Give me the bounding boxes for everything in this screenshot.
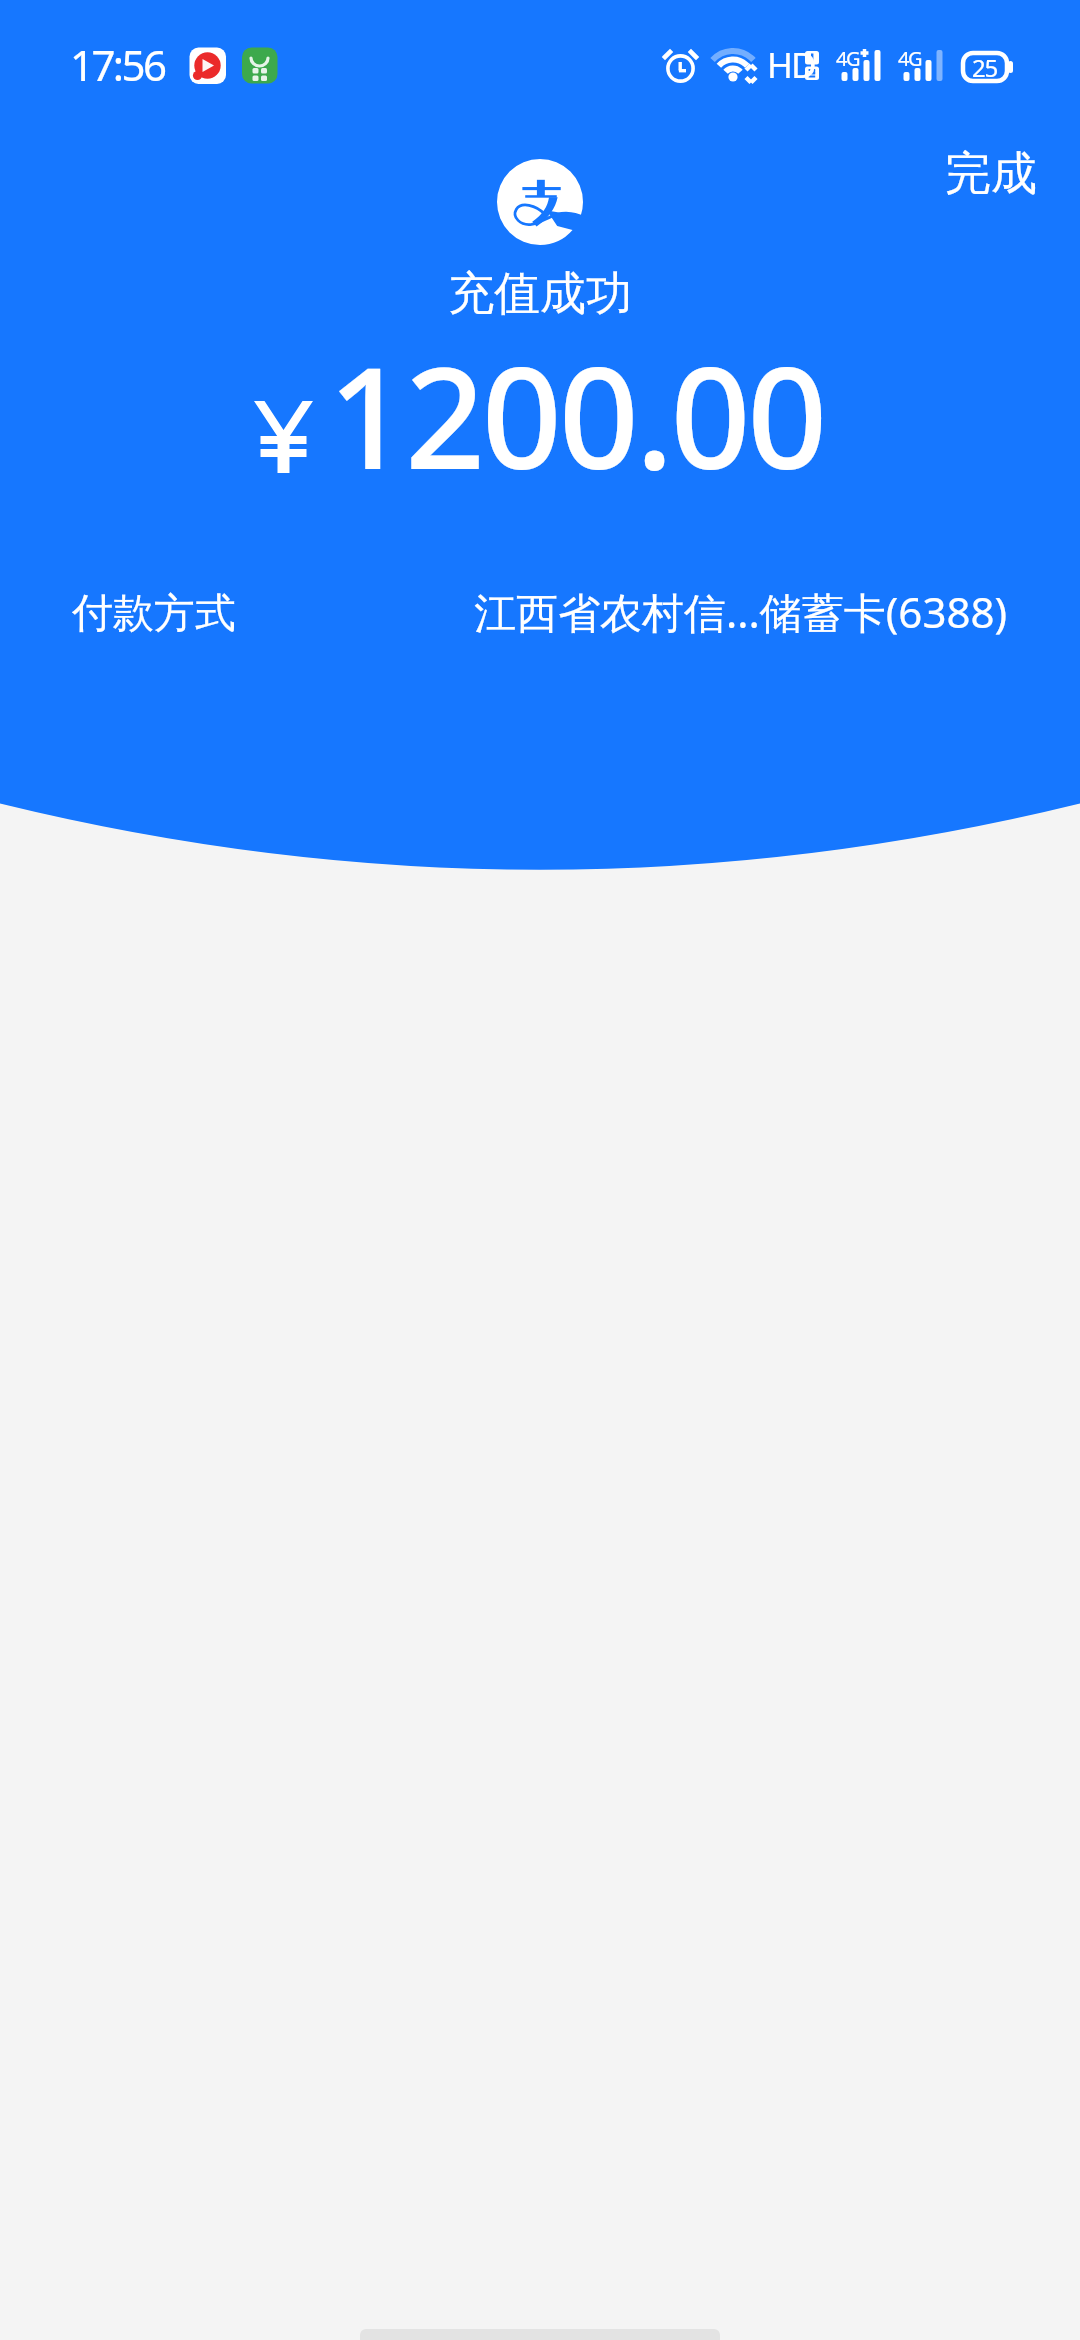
button[interactable]: Alipay xyxy=(497,159,583,245)
staticText: 4G xyxy=(836,45,860,72)
staticText: 完成 xyxy=(945,145,1037,203)
staticText: 4G xyxy=(898,45,922,72)
button[interactable]: 完成 xyxy=(927,133,1055,215)
staticText: 充值成功 xyxy=(448,265,632,323)
button[interactable]: 付款方式 xyxy=(0,579,1080,644)
staticText: HD xyxy=(767,41,815,89)
staticText: 25 xyxy=(972,51,998,84)
staticText: 17:56 xyxy=(70,36,165,93)
staticText: 付款方式 xyxy=(72,588,236,640)
staticText: 1200.00 xyxy=(328,319,825,510)
staticText: 江西省农村信...储蓄卡(6388) xyxy=(474,583,1008,640)
